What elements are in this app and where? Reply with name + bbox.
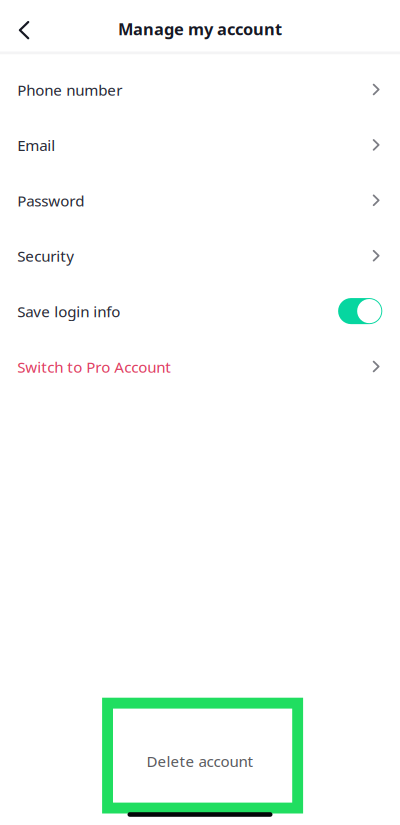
staticText: Password [17,190,84,211]
staticText: Save login info [17,301,120,322]
button[interactable]: Switch to Pro Account [0,339,400,394]
button[interactable]: Security [0,228,400,283]
staticText: Phone number [17,79,122,100]
button[interactable]: Phone number [0,62,400,117]
staticText: Security [17,246,74,266]
button[interactable]: Back [0,4,43,47]
button[interactable]: Save login info [0,283,400,339]
staticText: Switch to Pro Account [17,356,171,377]
staticText: Delete account [146,751,253,771]
button[interactable]: Delete account [102,698,303,813]
staticText: Manage my account [118,18,282,40]
button[interactable]: Password [0,173,400,228]
button[interactable]: Email [0,117,400,173]
staticText: Email [17,135,55,155]
